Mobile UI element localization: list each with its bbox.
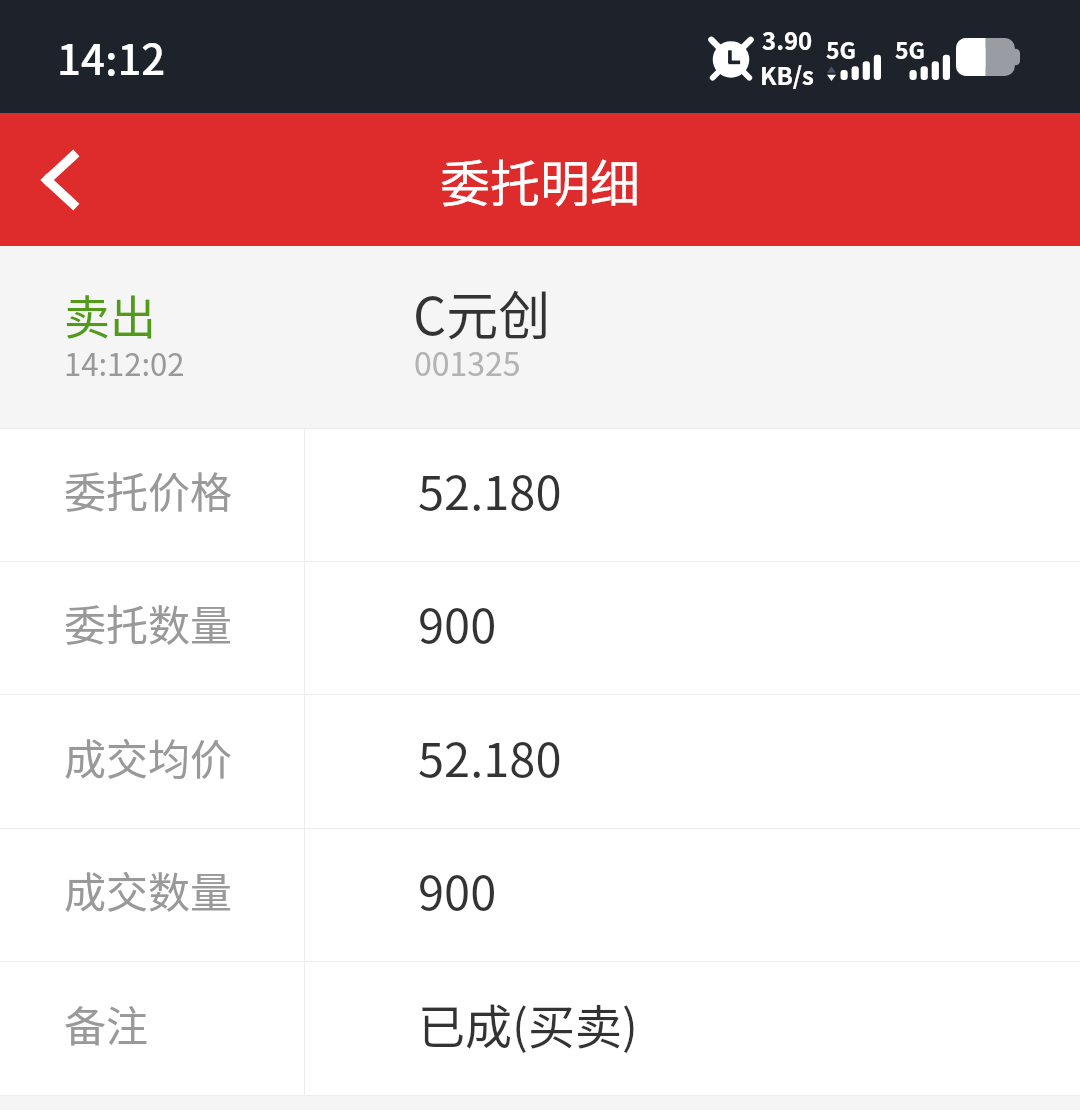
staticText: 5G [826, 32, 857, 65]
button[interactable]: 成交数量 [0, 829, 1080, 961]
staticText: 卖出 [64, 281, 156, 348]
staticText: 5G [895, 32, 926, 65]
staticText: 14:12 [57, 26, 166, 87]
staticText: 委托数量 [64, 592, 233, 653]
staticText: 3.90 [762, 22, 813, 57]
staticText: 成交均价 [64, 726, 233, 787]
staticText: 委托明细 [440, 144, 640, 216]
staticText: 成交数量 [64, 859, 233, 920]
button[interactable]: 委托价格 [0, 429, 1080, 561]
staticText: 52.180 [418, 722, 562, 790]
button[interactable]: 成交均价 [0, 695, 1080, 828]
button[interactable]: 备注 [0, 962, 1080, 1095]
staticText: 14:12:02 [64, 340, 185, 385]
staticText: 900 [418, 588, 497, 656]
staticText: 备注 [64, 993, 149, 1054]
staticText: 52.180 [418, 455, 562, 523]
button[interactable]: 委托数量 [0, 562, 1080, 694]
staticText: 委托价格 [64, 459, 233, 520]
staticText: C元创 [413, 275, 551, 350]
staticText: KB/s [760, 57, 814, 92]
staticText: 已成(买卖) [418, 989, 638, 1057]
button[interactable]: Back [0, 113, 120, 246]
staticText: 001325 [414, 339, 521, 385]
staticText: 900 [418, 855, 497, 923]
